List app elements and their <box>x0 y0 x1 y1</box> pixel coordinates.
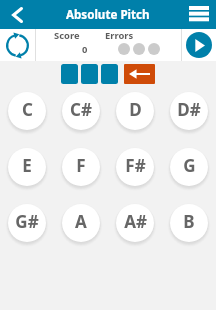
staticText: C# <box>70 98 92 121</box>
staticText: C <box>22 98 33 121</box>
staticText: A# <box>124 210 147 233</box>
staticText: G <box>183 154 196 177</box>
button[interactable]: F <box>62 148 100 186</box>
button[interactable]: B <box>170 204 208 242</box>
staticText: A <box>75 210 87 233</box>
staticText: Absolute Pitch <box>66 7 150 23</box>
button[interactable]: Backspace <box>124 64 155 84</box>
button[interactable]: C# <box>62 92 100 130</box>
button[interactable] <box>61 64 78 84</box>
button[interactable] <box>101 64 118 84</box>
button[interactable]: G <box>170 148 208 186</box>
staticText: F# <box>125 154 146 177</box>
button[interactable] <box>81 64 98 84</box>
button[interactable]: A# <box>116 204 154 242</box>
staticText: B <box>183 210 195 233</box>
button[interactable]: Back <box>0 0 34 29</box>
button[interactable]: Replay <box>0 29 35 61</box>
staticText: Score <box>54 29 80 42</box>
staticText: F <box>76 154 86 177</box>
button[interactable]: A <box>62 204 100 242</box>
button[interactable]: F# <box>116 148 154 186</box>
staticText: D# <box>177 98 201 121</box>
button[interactable]: D# <box>170 92 208 130</box>
staticText: 0 <box>82 43 88 56</box>
button[interactable]: Play <box>182 29 216 61</box>
button[interactable]: D <box>116 92 154 130</box>
button[interactable]: E <box>8 148 46 186</box>
button[interactable]: C <box>8 92 46 130</box>
button[interactable]: G# <box>8 204 46 242</box>
staticText: E <box>22 154 32 177</box>
staticText: G# <box>15 210 39 233</box>
button[interactable]: Menu <box>182 0 216 29</box>
staticText: D <box>129 98 142 121</box>
staticText: Errors <box>105 29 134 42</box>
